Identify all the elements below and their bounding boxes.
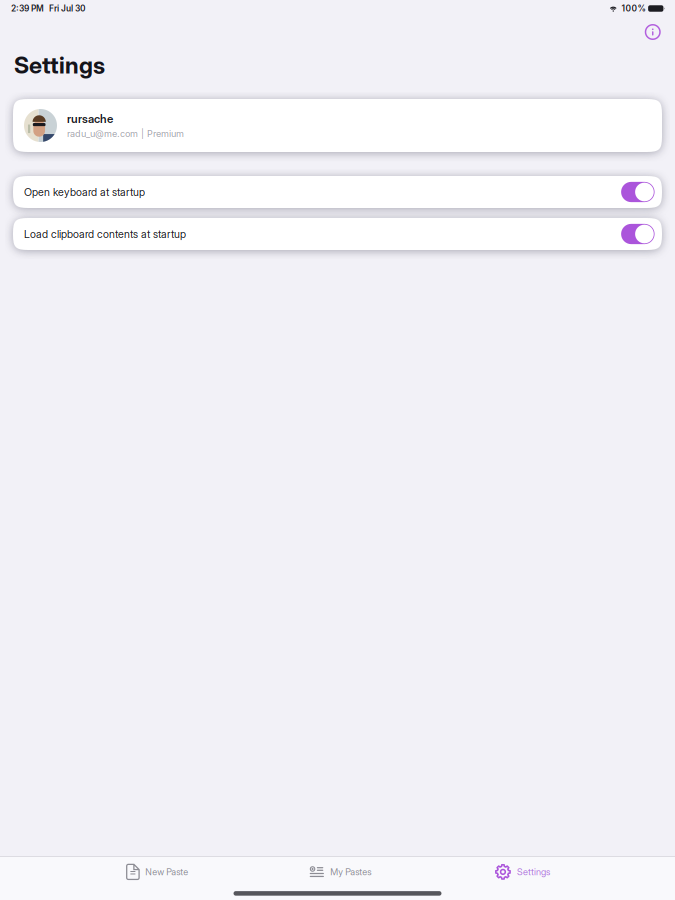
staticText: radu_u@me.com | Premium <box>67 128 184 139</box>
button[interactable]: New Paste <box>127 857 188 887</box>
staticText: My Pastes <box>330 866 371 877</box>
staticText: Settings <box>517 866 550 877</box>
staticText: 100% <box>621 3 645 14</box>
staticText: New Paste <box>145 866 188 877</box>
button[interactable]: Load clipboard contents at startup <box>13 218 662 250</box>
staticText: rursache <box>67 112 113 126</box>
button[interactable]: rursache <box>13 99 662 152</box>
staticText: 2:39 PM <box>11 3 44 14</box>
staticText: Open keyboard at startup <box>24 185 145 198</box>
button[interactable]: Open keyboard at startup <box>13 176 662 208</box>
staticText: Fri Jul 30 <box>49 3 86 14</box>
staticText: Settings <box>14 51 105 79</box>
staticText: Load clipboard contents at startup <box>24 227 186 240</box>
button[interactable]: Settings <box>495 857 550 887</box>
button[interactable]: My Pastes <box>310 857 371 887</box>
button[interactable]: Info <box>638 18 667 46</box>
